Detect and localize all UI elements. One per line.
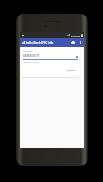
staticText: 1:37 PM — [71, 34, 80, 37]
button[interactable]: Clear — [75, 55, 78, 58]
staticText: Numeric 11 digits — [23, 61, 39, 64]
button[interactable]: Cloud download — [70, 38, 76, 47]
staticText: SBIN0000575 — [23, 54, 40, 58]
button[interactable]: SEARCH — [66, 67, 78, 72]
button[interactable]: More options — [78, 38, 82, 47]
staticText: all india Bank IFSC info — [22, 41, 54, 45]
staticText: SEARCH — [67, 68, 77, 71]
staticText: IFSC Code — [23, 50, 33, 53]
